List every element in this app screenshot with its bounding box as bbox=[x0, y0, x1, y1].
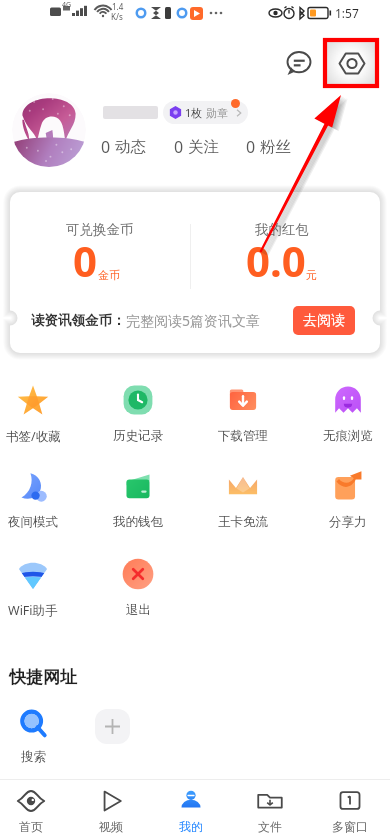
staticText: 夜间模式 bbox=[8, 514, 58, 530]
staticText: 1枚 bbox=[185, 105, 203, 120]
button[interactable]: 视频 bbox=[72, 790, 150, 840]
button[interactable]: 多窗口 bbox=[311, 790, 389, 840]
staticText: 快捷网址 bbox=[9, 667, 77, 688]
button[interactable]: 搜索 bbox=[0, 708, 71, 768]
button[interactable]: Messages bbox=[281, 44, 317, 82]
staticText: K/s bbox=[111, 11, 123, 22]
staticText: 勋章 bbox=[206, 106, 228, 120]
staticText: 我的 bbox=[179, 819, 203, 834]
button[interactable]: 退出 bbox=[100, 558, 176, 618]
button[interactable]: 0 bbox=[174, 136, 219, 158]
staticText: 0 bbox=[73, 232, 98, 289]
button[interactable]: 文件 bbox=[231, 790, 309, 840]
staticText: 无痕浏览 bbox=[323, 428, 373, 444]
button[interactable]: 我的钱包 bbox=[100, 470, 176, 530]
button[interactable]: 书签/收藏 bbox=[0, 384, 71, 444]
staticText: 退出 bbox=[126, 602, 151, 618]
staticText: 我的钱包 bbox=[113, 514, 163, 530]
staticText: 读资讯领金币： bbox=[31, 312, 126, 329]
staticText: 1.4 bbox=[112, 1, 124, 12]
button[interactable]: 分享力 bbox=[310, 470, 386, 530]
staticText: 分享力 bbox=[329, 514, 367, 530]
staticText: 可兑换金币 bbox=[66, 221, 134, 238]
staticText: 下载管理 bbox=[218, 428, 268, 444]
button[interactable]: 无痕浏览 bbox=[310, 384, 386, 444]
staticText: 0 bbox=[174, 136, 184, 158]
staticText: 多窗口 bbox=[332, 819, 368, 834]
staticText: 我的红包 bbox=[255, 221, 309, 238]
staticText: WiFi助手 bbox=[8, 602, 58, 618]
staticText: 关注 bbox=[188, 137, 219, 157]
staticText: 0.0 bbox=[246, 232, 306, 289]
button[interactable]: Settings bbox=[333, 44, 371, 82]
button[interactable]: Add shortcut bbox=[95, 709, 130, 744]
staticText: 文件 bbox=[258, 819, 282, 834]
button[interactable]: 0 bbox=[101, 136, 146, 158]
staticText: 元 bbox=[306, 268, 317, 282]
staticText: 粉丝 bbox=[260, 137, 291, 157]
staticText: 书签/收藏 bbox=[6, 428, 61, 444]
staticText: 王卡免流 bbox=[218, 514, 268, 530]
button[interactable]: 1枚 bbox=[163, 101, 248, 124]
button[interactable]: 我的 bbox=[152, 790, 230, 840]
button[interactable]: 王卡免流 bbox=[205, 470, 281, 530]
button[interactable]: 历史记录 bbox=[100, 384, 176, 444]
staticText: 1:57 bbox=[335, 5, 359, 21]
staticText: 0 bbox=[101, 136, 111, 158]
staticText: 视频 bbox=[99, 819, 123, 834]
staticText: 0 bbox=[246, 136, 256, 158]
staticText: 完整阅读5篇资讯文章 bbox=[126, 311, 261, 330]
staticText: 金币 bbox=[98, 268, 120, 282]
button[interactable]: 夜间模式 bbox=[0, 470, 71, 530]
staticText: 历史记录 bbox=[113, 428, 163, 444]
staticText: 4G bbox=[62, 0, 72, 10]
button[interactable]: WiFi助手 bbox=[0, 558, 71, 618]
staticText: 去阅读 bbox=[303, 312, 345, 330]
button[interactable]: 去阅读 bbox=[293, 306, 355, 335]
staticText: 首页 bbox=[19, 819, 43, 834]
button[interactable]: 0 bbox=[246, 136, 291, 158]
staticText: 搜索 bbox=[21, 749, 46, 765]
button[interactable]: Avatar bbox=[12, 93, 86, 167]
staticText: 动态 bbox=[115, 137, 146, 157]
button[interactable]: 首页 bbox=[0, 790, 70, 840]
button[interactable]: 下载管理 bbox=[205, 384, 281, 444]
